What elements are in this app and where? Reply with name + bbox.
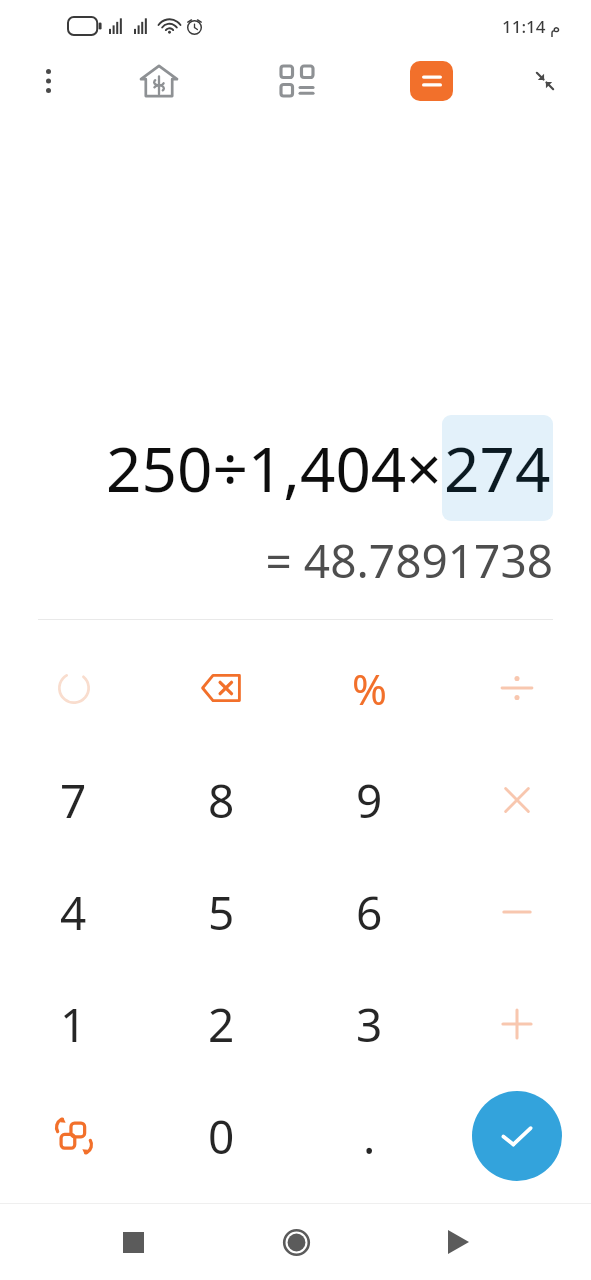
button[interactable]: 7 [0, 744, 147, 856]
staticText: 4 [60, 881, 87, 944]
button[interactable]: Backspace [147, 632, 295, 744]
button[interactable]: Home [267, 1213, 325, 1271]
button[interactable]: 274 [444, 426, 551, 510]
button[interactable]: Back [429, 1213, 487, 1271]
staticText: % [352, 660, 387, 717]
staticText: = 48.7891738 [0, 529, 553, 592]
button[interactable]: Operator [443, 856, 591, 968]
button[interactable]: 5 [147, 856, 295, 968]
button[interactable]: 6 [295, 856, 443, 968]
staticText: 0 [208, 1105, 235, 1168]
button[interactable]: 8 [147, 744, 295, 856]
button[interactable]: . [295, 1080, 443, 1192]
button[interactable]: More options [28, 61, 68, 101]
button[interactable]: Collapse [522, 58, 568, 104]
button[interactable]: Confirm [472, 1091, 562, 1181]
button[interactable]: Operator [443, 968, 591, 1080]
staticText: 6 [356, 881, 383, 944]
staticText: 7 [60, 769, 87, 832]
button[interactable]: 0 [147, 1080, 295, 1192]
staticText: 1 [60, 993, 87, 1056]
staticText: 250÷1,404× [106, 426, 442, 510]
button[interactable]: Home currency [133, 55, 185, 107]
button[interactable]: Categories [271, 55, 323, 107]
staticText: 274 [444, 426, 551, 510]
button[interactable]: 4 [0, 856, 147, 968]
button[interactable]: 3 [295, 968, 443, 1080]
button[interactable]: Operator [443, 744, 591, 856]
staticText: 5 [208, 881, 235, 944]
staticText: 3 [356, 993, 383, 1056]
button[interactable]: Recent apps [104, 1213, 162, 1271]
button[interactable]: 1 [0, 968, 147, 1080]
staticText: 8 [208, 769, 235, 832]
button[interactable]: Clear [0, 632, 147, 744]
button[interactable]: Divide [443, 632, 591, 744]
staticText: م 11:14 [502, 15, 561, 38]
button[interactable]: Equals [410, 61, 453, 101]
button[interactable]: 2 [147, 968, 295, 1080]
button[interactable]: Convert [0, 1080, 147, 1192]
staticText: 9 [356, 769, 383, 832]
staticText: 2 [208, 993, 235, 1056]
staticText: . [363, 1105, 376, 1168]
button[interactable]: 9 [295, 744, 443, 856]
button[interactable]: Percent [295, 632, 443, 744]
